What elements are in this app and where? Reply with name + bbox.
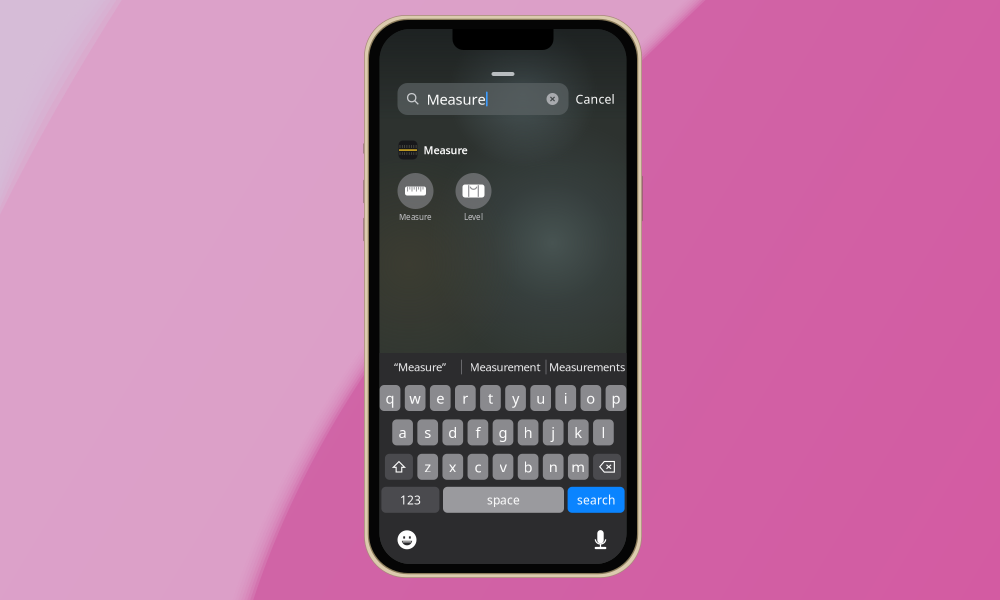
button[interactable]: Measurements — [547, 353, 627, 381]
button[interactable]: Dictate — [594, 530, 606, 550]
staticText: “Measure” — [394, 359, 446, 375]
button[interactable]: k — [568, 419, 589, 445]
button[interactable]: Cancel — [568, 83, 621, 115]
staticText: l — [601, 423, 605, 442]
button[interactable]: Emoji — [397, 530, 416, 549]
staticText: e — [436, 388, 444, 408]
button[interactable]: Measurement — [465, 353, 545, 381]
staticText: q — [386, 388, 395, 408]
staticText: f — [475, 423, 480, 442]
staticText: Measure — [423, 143, 467, 157]
button[interactable]: y — [505, 385, 526, 411]
button[interactable]: Shift — [385, 454, 413, 480]
button[interactable]: t — [480, 385, 501, 411]
button[interactable]: l — [593, 419, 614, 445]
button[interactable]: c — [468, 454, 488, 480]
staticText: t — [488, 388, 493, 408]
button[interactable]: Delete — [593, 454, 621, 480]
button[interactable]: h — [518, 419, 538, 445]
staticText: k — [574, 423, 582, 442]
button[interactable]: i — [555, 385, 576, 411]
button[interactable]: Measure — [397, 83, 568, 115]
staticText: i — [564, 388, 568, 408]
staticText: Measure — [399, 212, 432, 222]
button[interactable]: f — [468, 419, 488, 445]
button[interactable]: m — [568, 454, 589, 480]
staticText: x — [449, 457, 457, 477]
staticText: Level — [464, 212, 483, 222]
button[interactable]: z — [417, 454, 438, 480]
staticText: r — [462, 388, 468, 408]
staticText: j — [551, 423, 555, 442]
button[interactable]: search — [568, 487, 625, 513]
button[interactable]: Measure — [397, 173, 433, 209]
staticText: v — [499, 457, 506, 477]
staticText: w — [409, 388, 421, 408]
button[interactable]: g — [493, 419, 513, 445]
button[interactable]: n — [543, 454, 564, 480]
button[interactable]: Level — [455, 173, 491, 209]
button[interactable]: p — [606, 385, 626, 411]
button[interactable]: s — [417, 419, 438, 445]
staticText: g — [498, 423, 507, 442]
staticText: space — [487, 492, 520, 508]
button[interactable]: Measure — [379, 140, 626, 160]
button[interactable]: d — [442, 419, 463, 445]
button[interactable]: space — [443, 487, 564, 513]
staticText: Measurement — [469, 359, 540, 375]
staticText: s — [424, 423, 431, 442]
staticText: b — [524, 457, 533, 477]
staticText: y — [512, 388, 519, 408]
staticText: c — [474, 457, 481, 477]
button[interactable]: “Measure” — [380, 353, 460, 381]
staticText: u — [536, 388, 545, 408]
button[interactable]: v — [493, 454, 513, 480]
staticText: search — [577, 492, 615, 508]
staticText: Measurements — [549, 359, 625, 375]
staticText: Cancel — [575, 91, 614, 107]
staticText: o — [586, 388, 595, 408]
staticText: m — [571, 457, 585, 477]
staticText: n — [549, 457, 558, 477]
button[interactable]: r — [455, 385, 476, 411]
button[interactable]: a — [392, 419, 413, 445]
staticText: Measure — [426, 89, 485, 109]
button[interactable]: x — [442, 454, 463, 480]
button[interactable]: q — [380, 385, 400, 411]
button[interactable]: u — [530, 385, 551, 411]
staticText: a — [399, 423, 407, 442]
button[interactable]: b — [518, 454, 538, 480]
button[interactable]: e — [430, 385, 451, 411]
staticText: 123 — [400, 492, 421, 508]
staticText: p — [611, 388, 620, 408]
staticText: d — [448, 423, 457, 442]
button[interactable]: j — [543, 419, 564, 445]
staticText: h — [524, 423, 533, 442]
button[interactable]: o — [580, 385, 601, 411]
button[interactable]: 123 — [381, 487, 439, 513]
staticText: z — [424, 457, 431, 477]
button[interactable]: w — [405, 385, 425, 411]
